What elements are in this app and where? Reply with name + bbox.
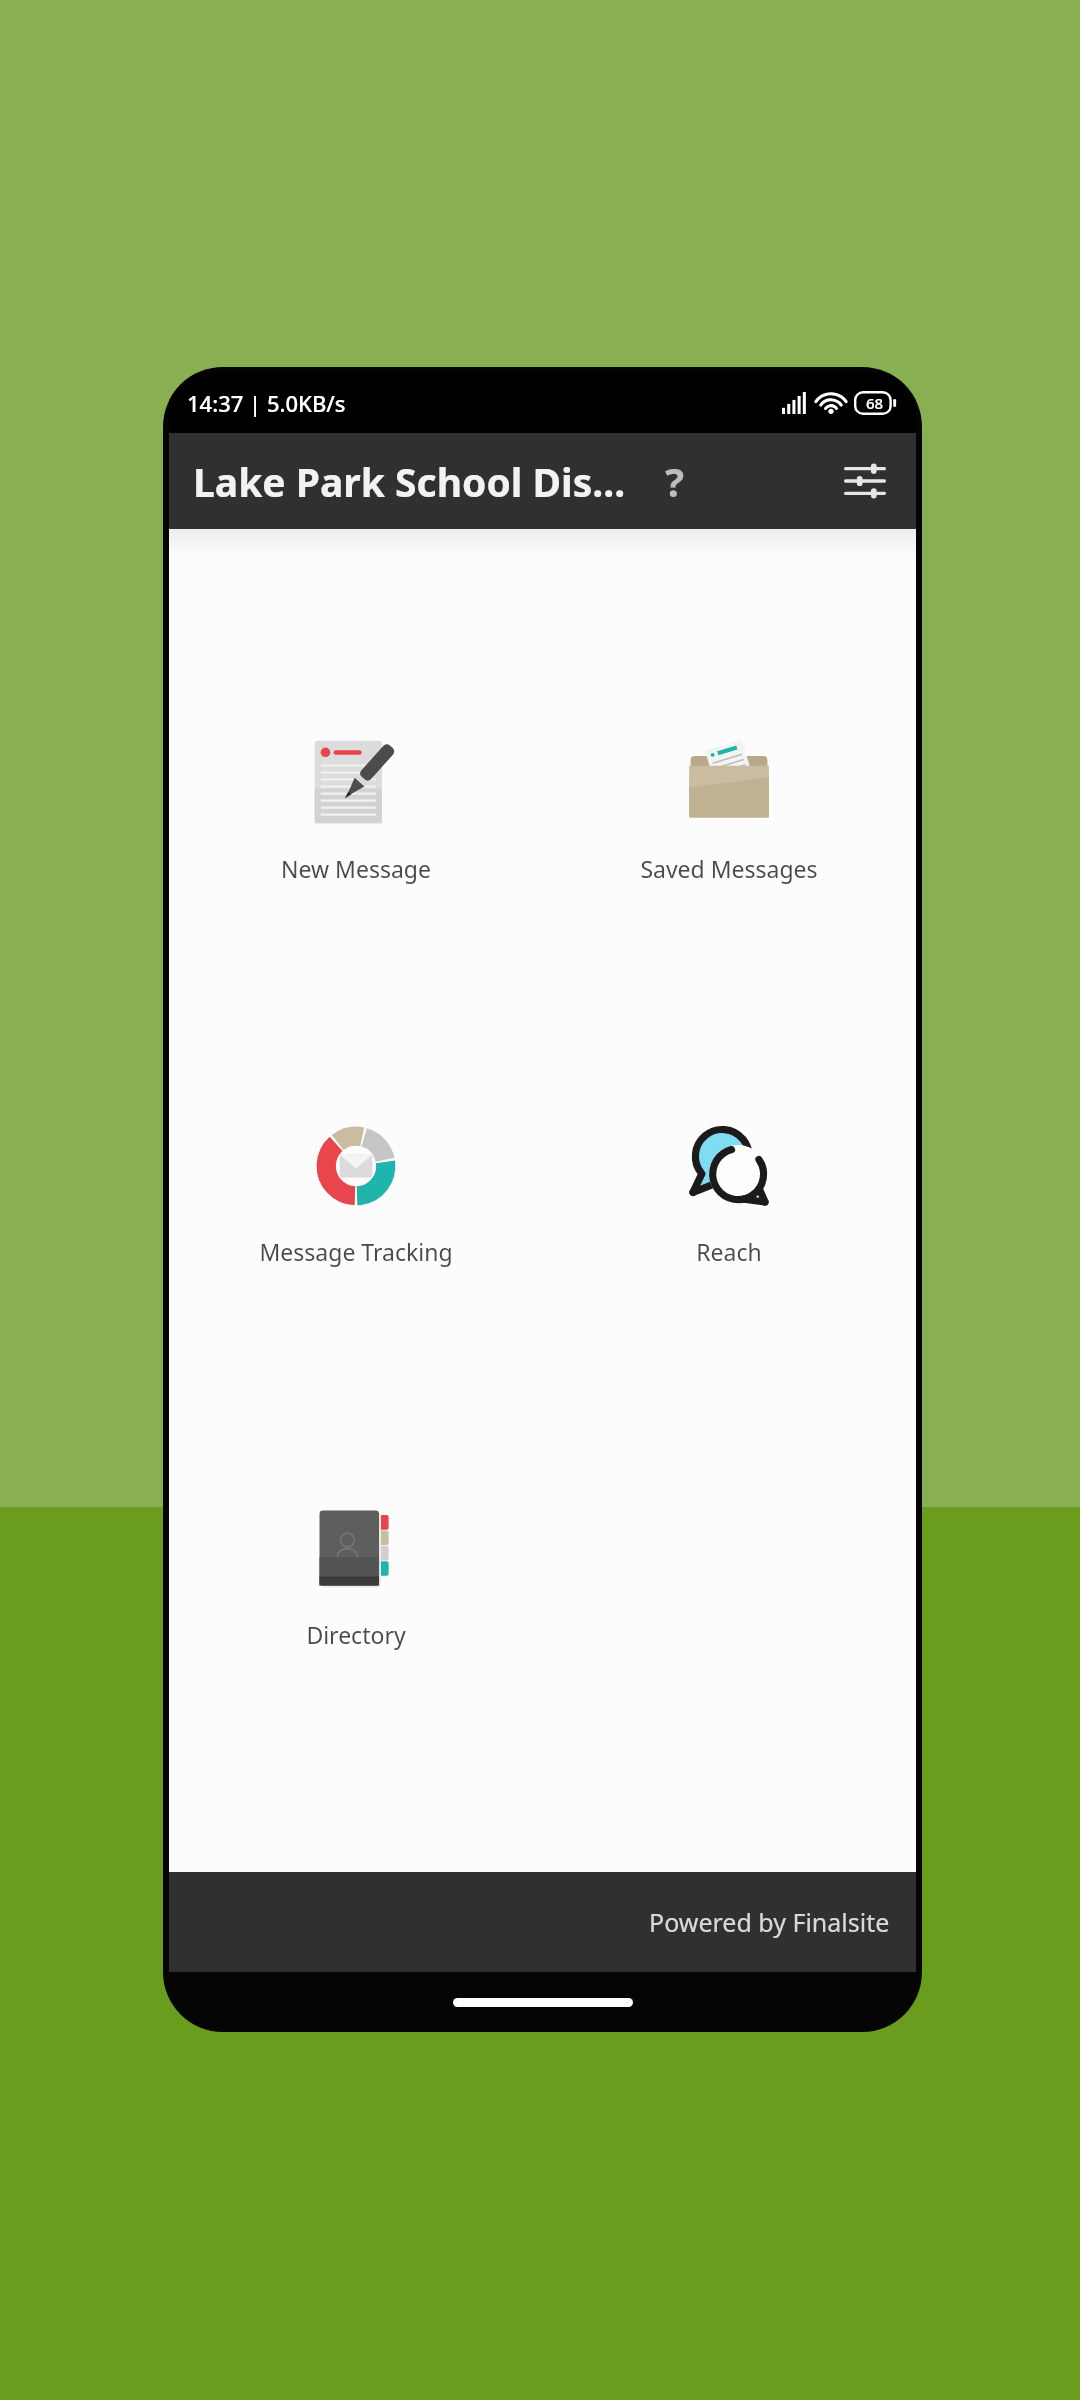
staticText: Lake Park School Dis... — [193, 455, 626, 508]
button[interactable]: Help — [648, 454, 702, 508]
button[interactable]: Reach — [579, 1112, 879, 1273]
staticText: Message Tracking — [259, 1236, 453, 1267]
staticText: Directory — [306, 1619, 406, 1650]
button[interactable]: Directory — [206, 1495, 506, 1656]
button[interactable]: Message Tracking — [206, 1112, 506, 1273]
button[interactable]: Settings — [834, 450, 896, 512]
button[interactable]: Saved Messages — [579, 729, 879, 890]
button[interactable]: New Message — [206, 729, 506, 890]
staticText: Powered by Finalsite — [649, 1905, 890, 1939]
staticText: ? — [665, 454, 685, 508]
staticText: 14:37 | 5.0KB/s — [187, 388, 346, 418]
staticText: New Message — [281, 853, 431, 884]
staticText: 68 — [866, 393, 884, 413]
staticText: Saved Messages — [640, 853, 818, 884]
staticText: Reach — [696, 1236, 762, 1267]
